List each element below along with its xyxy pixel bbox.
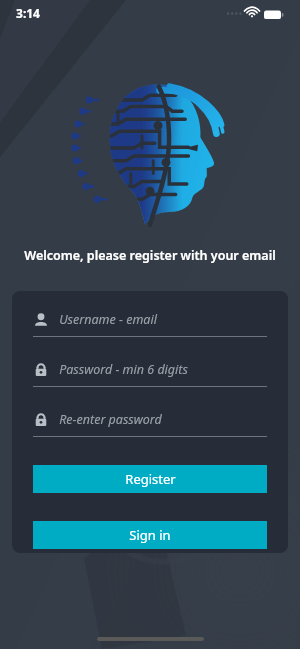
other: Username bbox=[33, 312, 49, 328]
button[interactable]: Password bbox=[12, 403, 288, 453]
button[interactable]: Username bbox=[12, 303, 288, 353]
staticText: Sign in bbox=[129, 526, 171, 544]
other: Password bbox=[33, 412, 49, 428]
staticText: Welcome, please register with your email bbox=[24, 247, 276, 264]
staticText: Register bbox=[125, 470, 176, 488]
staticText: Password - min 6 digits bbox=[59, 361, 188, 378]
button[interactable]: Password bbox=[12, 353, 288, 403]
other: Password bbox=[33, 362, 49, 378]
button[interactable]: Register bbox=[33, 465, 267, 493]
staticText: Re-enter password bbox=[59, 411, 162, 428]
button[interactable]: Sign in bbox=[33, 521, 267, 549]
staticText: 3:14 bbox=[16, 5, 40, 21]
staticText: Username - email bbox=[59, 311, 157, 328]
